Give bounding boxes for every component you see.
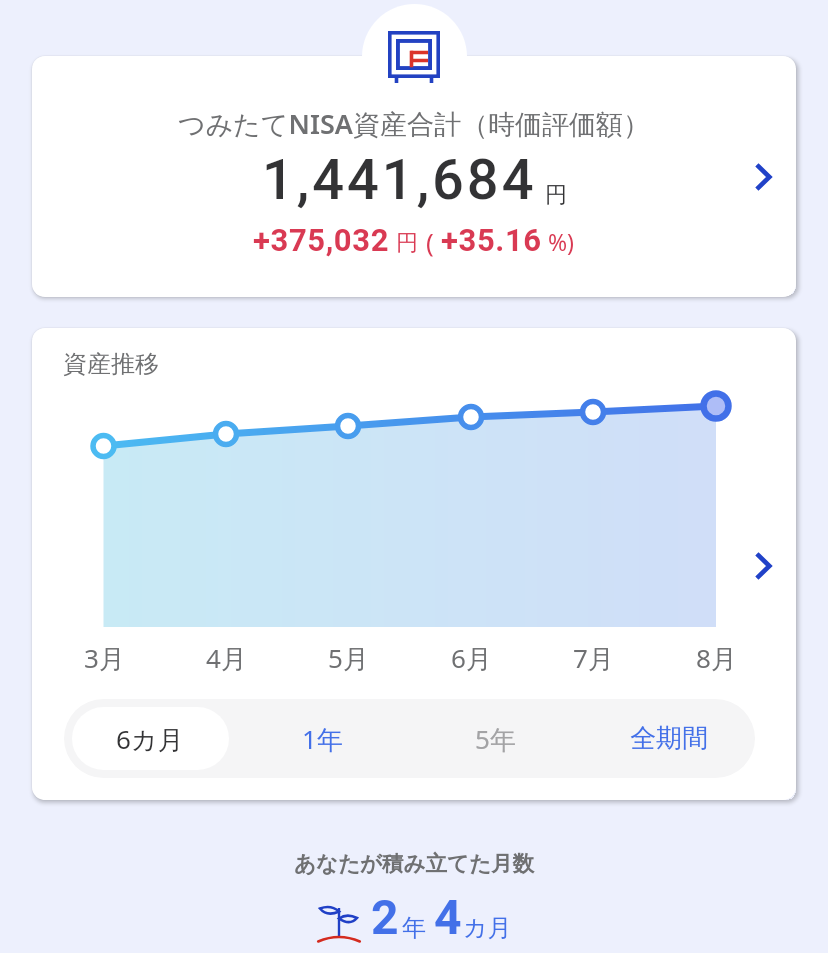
staticText: 6カ月 xyxy=(116,721,184,757)
staticText: つみたてNISA資産合計（時価評価額） xyxy=(178,105,650,142)
staticText: 年 xyxy=(402,913,426,943)
staticText: 円 xyxy=(396,229,418,257)
staticText: 4月 xyxy=(206,640,247,676)
button[interactable]: 資産推移の詳細 xyxy=(740,543,786,589)
button[interactable]: 6カ月 xyxy=(64,699,236,778)
staticText: +375,032 xyxy=(253,222,390,258)
staticText: 8月 xyxy=(696,640,737,676)
staticText: 2 xyxy=(371,889,399,945)
staticText: カ月 xyxy=(463,913,512,943)
staticText: 6月 xyxy=(451,640,492,676)
button[interactable]: 資産合計の詳細 xyxy=(740,154,786,200)
staticText: 全期間 xyxy=(630,722,708,755)
staticText: %) xyxy=(548,226,575,257)
staticText: 資産推移 xyxy=(63,349,159,379)
staticText: +35.16 xyxy=(441,222,542,258)
staticText: 5月 xyxy=(328,640,369,676)
staticText: 5年 xyxy=(475,721,516,757)
staticText: 円 xyxy=(545,181,567,209)
button[interactable]: 全期間 xyxy=(582,699,755,778)
button[interactable]: 5年 xyxy=(409,699,582,778)
staticText: あなたが積み立てた月数 xyxy=(294,850,535,877)
button[interactable]: 1年 xyxy=(236,699,409,778)
staticText: 7月 xyxy=(573,640,614,676)
staticText: 1,441,684 xyxy=(262,147,537,213)
staticText: 1年 xyxy=(302,721,343,757)
button[interactable]: つみたてNISA資産合計（時価評価額） xyxy=(32,56,796,297)
staticText: 3月 xyxy=(84,640,125,676)
staticText: 4 xyxy=(434,889,462,945)
staticText: ( xyxy=(426,224,434,259)
